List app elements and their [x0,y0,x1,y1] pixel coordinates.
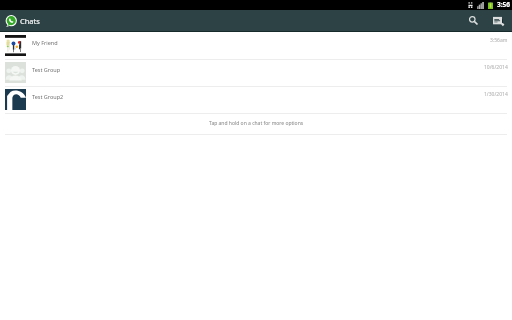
staticText: Tap and hold on a chat for more options [209,120,304,127]
staticText: Test Group [32,66,61,73]
button[interactable]: My Friend [0,32,512,59]
staticText: 10/6/2014 [484,64,508,71]
staticText: Chats [20,16,40,26]
staticText: 3:56am [490,37,508,44]
staticText: My Friend [32,39,58,46]
staticText: 3:56 [497,0,510,9]
staticText: 1/30/2014 [484,91,508,98]
button[interactable]: Search [462,10,483,32]
button[interactable]: Test Group2 [0,86,512,113]
button[interactable]: Test Group [0,59,512,86]
staticText: Test Group2 [32,93,64,100]
button[interactable]: New chat [488,10,509,32]
